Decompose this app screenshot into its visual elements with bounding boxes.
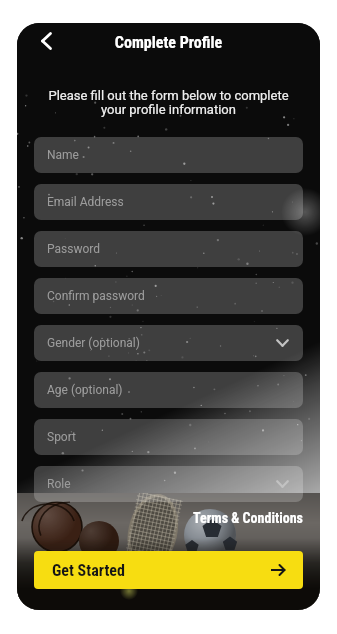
staticText: Confirm password [47,289,145,303]
staticText: Age (optional) [47,383,123,397]
staticText: Please fill out the form below to comple… [46,88,291,117]
button[interactable]: Age (optional) [34,372,303,408]
staticText: Role [47,477,71,491]
button[interactable]: Password [34,231,303,267]
button[interactable]: Gender (optional) [34,325,303,361]
staticText: Name [47,148,79,162]
staticText: Email Address [47,195,124,209]
button[interactable]: Sport [34,419,303,455]
staticText: Complete Profile [17,33,320,52]
button[interactable]: Name [34,137,303,173]
button[interactable]: Confirm password [34,278,303,314]
button[interactable]: Back [31,25,62,56]
staticText: Gender (optional) [47,336,140,350]
button[interactable]: Get Started [34,551,303,589]
staticText: Sport [47,430,76,444]
staticText: Password [47,242,101,256]
staticText: Get Started [52,561,125,580]
button[interactable]: Role [34,466,303,502]
button[interactable]: Email Address [34,184,303,220]
button[interactable]: Terms & Conditions [193,510,303,526]
